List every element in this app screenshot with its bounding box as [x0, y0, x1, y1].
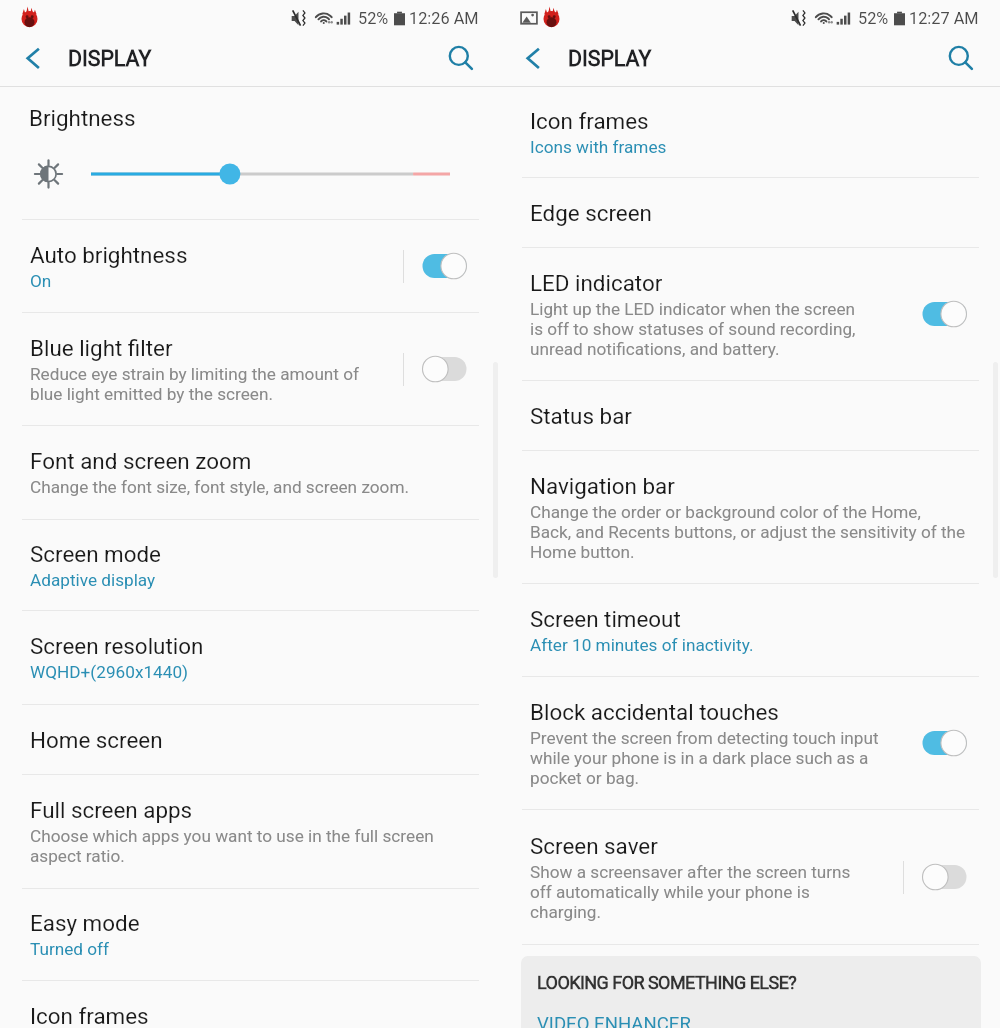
- staticText: Screen resolution: [30, 633, 204, 659]
- staticText: Full screen apps: [30, 797, 193, 823]
- button[interactable]: Font and screen zoom: [0, 426, 500, 519]
- button[interactable]: Navigation bar: [500, 451, 1000, 583]
- button[interactable]: Screen mode: [0, 520, 500, 610]
- button[interactable]: Edge screen: [500, 178, 1000, 247]
- staticText: Icon frames: [530, 108, 649, 134]
- staticText: After 10 minutes of inactivity.: [530, 635, 754, 655]
- button[interactable]: Screen timeout: [500, 584, 1000, 676]
- button[interactable]: Off: [922, 861, 967, 893]
- button[interactable]: Screen saver: [500, 810, 1000, 944]
- staticText: 12:27 AM: [909, 9, 979, 28]
- staticText: Turned off: [30, 939, 110, 959]
- staticText: Show a screensaver after the screen turn…: [530, 862, 851, 922]
- button[interactable]: On: [922, 298, 967, 330]
- staticText: Blue light filter: [30, 335, 173, 361]
- button[interactable]: Auto brightness: [0, 220, 500, 312]
- button[interactable]: Screen resolution: [0, 611, 500, 704]
- staticText: Light up the LED indicator when the scre…: [530, 299, 856, 359]
- staticText: Reduce eye strain by limiting the amount…: [30, 364, 360, 404]
- button[interactable]: Blue light filter: [0, 313, 500, 425]
- staticText: Edge screen: [530, 200, 652, 226]
- staticText: Easy mode: [30, 910, 140, 936]
- button[interactable]: Search: [441, 43, 477, 79]
- staticText: 12:26 AM: [409, 9, 479, 28]
- staticText: VIDEO ENHANCER: [537, 1013, 691, 1028]
- staticText: Brightness: [29, 105, 136, 131]
- button[interactable]: Easy mode: [0, 889, 500, 980]
- staticText: Change the font size, font style, and sc…: [30, 477, 409, 497]
- staticText: Font and screen zoom: [30, 448, 252, 474]
- staticText: LOOKING FOR SOMETHING ELSE?: [537, 972, 797, 993]
- staticText: Change the order or background color of …: [530, 502, 966, 562]
- button[interactable]: Status bar: [500, 381, 1000, 450]
- staticText: Screen saver: [530, 833, 658, 859]
- staticText: Choose which apps you want to use in the…: [30, 826, 434, 866]
- staticText: Home screen: [30, 727, 163, 753]
- staticText: Screen mode: [30, 541, 161, 567]
- button[interactable]: Navigate up: [9, 43, 45, 79]
- staticText: Screen timeout: [530, 606, 681, 632]
- button[interactable]: On: [922, 727, 967, 759]
- staticText: WQHD+(2960x1440): [30, 662, 189, 682]
- button[interactable]: On: [422, 250, 467, 282]
- button[interactable]: Block accidental touches: [500, 677, 1000, 809]
- staticText: Navigation bar: [530, 473, 675, 499]
- staticText: Auto brightness: [30, 242, 188, 268]
- staticText: LED indicator: [530, 270, 663, 296]
- button[interactable]: Home screen: [0, 705, 500, 774]
- button[interactable]: LED indicator: [500, 248, 1000, 380]
- button[interactable]: Off: [422, 353, 467, 385]
- button[interactable]: Full screen apps: [0, 775, 500, 888]
- staticText: DISPLAY: [568, 46, 652, 71]
- staticText: Prevent the screen from detecting touch …: [530, 728, 879, 788]
- staticText: Icons with frames: [530, 137, 667, 157]
- button[interactable]: Icon frames: [500, 87, 1000, 177]
- button[interactable]: Search: [941, 43, 977, 79]
- staticText: Block accidental touches: [530, 699, 779, 725]
- staticText: 52%: [358, 9, 389, 28]
- staticText: Adaptive display: [30, 570, 156, 590]
- staticText: On: [30, 271, 52, 291]
- staticText: Icon frames: [30, 1003, 149, 1028]
- button[interactable]: Icon frames: [0, 981, 500, 1028]
- staticText: 52%: [858, 9, 889, 28]
- button[interactable]: Navigate up: [509, 43, 545, 79]
- staticText: DISPLAY: [68, 46, 152, 71]
- staticText: Status bar: [530, 403, 632, 429]
